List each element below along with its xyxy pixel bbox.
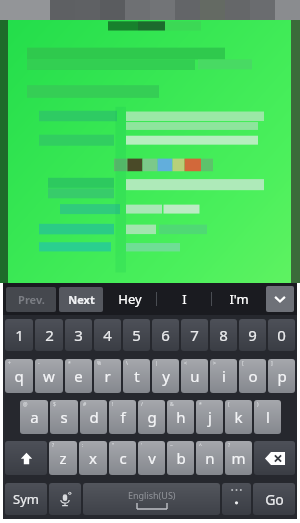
button[interactable]: 2: [35, 319, 63, 351]
staticText: s: [60, 407, 68, 427]
staticText: a: [30, 407, 39, 427]
button[interactable]: x: [79, 441, 107, 475]
staticText: v: [148, 448, 156, 468]
button[interactable]: h: [167, 400, 194, 434]
button[interactable]: f: [109, 400, 136, 434]
staticText: e: [74, 366, 83, 386]
button[interactable]: English(US): [83, 483, 220, 515]
staticText: !: [112, 401, 114, 408]
button[interactable]: b: [167, 441, 194, 475]
button[interactable]: Next: [59, 287, 103, 312]
button[interactable]: 5: [123, 319, 150, 351]
button[interactable]: u: [181, 359, 208, 393]
button[interactable]: Go: [253, 483, 295, 515]
staticText: 7: [190, 325, 199, 345]
staticText: ": [112, 442, 115, 449]
staticText: #: [83, 401, 87, 408]
button[interactable]: Shift: [5, 441, 47, 475]
staticText: <: [184, 360, 187, 367]
staticText: 2: [45, 325, 54, 345]
button[interactable]: z: [49, 441, 77, 475]
staticText: 5: [132, 325, 141, 345]
button[interactable]: Voice input: [49, 483, 81, 515]
button[interactable]: 8: [210, 319, 237, 351]
staticText: f: [120, 407, 126, 427]
staticText: p: [277, 366, 287, 386]
button[interactable]: Prev.: [6, 287, 56, 312]
button[interactable]: o: [239, 359, 266, 393]
button[interactable]: 9: [239, 319, 266, 351]
button[interactable]: 3: [65, 319, 92, 351]
staticText: ?: [228, 442, 231, 449]
staticText: r: [104, 366, 111, 386]
staticText: b: [176, 448, 186, 468]
staticText: Go: [265, 490, 284, 509]
staticText: ': [141, 442, 143, 449]
staticText: >: [213, 360, 216, 367]
staticText: k: [234, 407, 243, 427]
staticText: $: [53, 401, 56, 408]
button[interactable]: 4: [94, 319, 121, 351]
button[interactable]: y: [152, 359, 179, 393]
button[interactable]: Sym: [5, 483, 47, 515]
staticText: g: [147, 407, 157, 427]
staticText: i: [222, 366, 226, 386]
button[interactable]: m: [225, 441, 252, 475]
staticText: w: [43, 366, 55, 386]
button[interactable]: n: [196, 441, 223, 475]
staticText: 3: [74, 325, 83, 345]
button[interactable]: v: [138, 441, 165, 475]
button[interactable]: d: [80, 400, 107, 434]
staticText: y: [162, 366, 170, 386]
button[interactable]: I: [157, 283, 211, 315]
staticText: I'm: [229, 290, 249, 308]
button[interactable]: Hide keyboard: [266, 286, 294, 312]
staticText: 1: [15, 325, 24, 345]
staticText: o: [248, 366, 258, 386]
staticText: Sym: [13, 490, 39, 508]
staticText: *: [199, 401, 202, 408]
button[interactable]: l: [254, 400, 281, 434]
button[interactable]: Hey: [103, 283, 156, 315]
button[interactable]: a: [20, 400, 48, 434]
button[interactable]: s: [50, 400, 78, 434]
staticText: +: [8, 360, 11, 367]
button[interactable]: q: [5, 359, 33, 393]
button[interactable]: I'm: [212, 283, 266, 315]
button[interactable]: r: [94, 359, 121, 393]
button[interactable]: c: [109, 441, 136, 475]
staticText: n: [205, 448, 215, 468]
button[interactable]: 1: [5, 319, 33, 351]
button[interactable]: 6: [152, 319, 179, 351]
button[interactable]: Period: [222, 483, 251, 515]
button[interactable]: t: [123, 359, 150, 393]
button[interactable]: 0: [268, 319, 295, 351]
staticText: %: [97, 360, 102, 367]
staticText: (: [228, 401, 230, 408]
staticText: Prev.: [18, 292, 45, 307]
button[interactable]: j: [196, 400, 223, 434]
button[interactable]: i: [210, 359, 237, 393]
button[interactable]: p: [268, 359, 295, 393]
staticText: q: [14, 366, 24, 386]
staticText: z: [59, 448, 67, 468]
button[interactable]: w: [35, 359, 63, 393]
button[interactable]: 7: [181, 319, 208, 351]
staticText: 0: [277, 325, 286, 345]
staticText: j: [208, 407, 212, 427]
button[interactable]: k: [225, 400, 252, 434]
staticText: d: [89, 407, 99, 427]
staticText: x: [89, 448, 97, 468]
staticText: /: [141, 401, 143, 408]
staticText: t: [134, 366, 140, 386]
button[interactable]: e: [65, 359, 92, 393]
staticText: [: [242, 360, 244, 367]
button[interactable]: g: [138, 400, 165, 434]
staticText: 4: [103, 325, 112, 345]
staticText: 8: [219, 325, 228, 345]
staticText: c: [119, 448, 127, 468]
button[interactable]: Backspace: [254, 441, 295, 475]
staticText: \: [126, 360, 128, 367]
staticText: Next: [68, 292, 95, 307]
staticText: l: [266, 407, 270, 427]
